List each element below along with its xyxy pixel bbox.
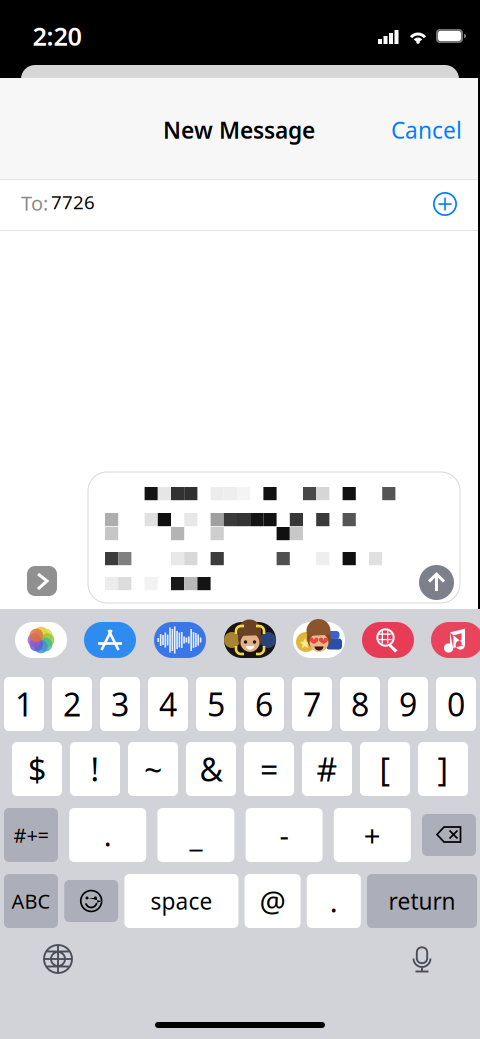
button[interactable]: Cancel [352, 113, 462, 147]
button[interactable]: = [244, 742, 294, 796]
button[interactable]: Switch keyboard [43, 944, 73, 974]
button[interactable]: Images [362, 622, 414, 658]
button[interactable]: 6 [244, 677, 284, 731]
button[interactable]: #+= [4, 808, 58, 862]
button[interactable]: Send [419, 565, 454, 600]
staticText: 9 [399, 683, 417, 725]
button[interactable]: _ [157, 808, 234, 862]
button[interactable]: Memoji stickers [293, 622, 345, 658]
staticText: 2:20 [32, 19, 81, 53]
staticText: #+= [13, 822, 48, 848]
button[interactable]: 2 [52, 677, 92, 731]
staticText: 3 [111, 683, 129, 725]
button[interactable]: [ [360, 742, 410, 796]
button[interactable]: - [246, 808, 323, 862]
button[interactable]: Music [431, 622, 480, 658]
button[interactable]: return [367, 874, 477, 928]
staticText: New Message [163, 115, 315, 145]
button[interactable]: Memoji [224, 622, 276, 658]
staticText: 4 [159, 683, 177, 725]
button[interactable]: 1 [4, 677, 44, 731]
button[interactable]: 8 [340, 677, 380, 731]
button[interactable]: & [186, 742, 236, 796]
staticText: @ [260, 881, 286, 920]
staticText: ! [90, 748, 99, 790]
button[interactable]: Delete [422, 814, 476, 856]
button[interactable]: # [302, 742, 352, 796]
staticText: ~ [144, 748, 162, 790]
staticText: ] [437, 748, 448, 790]
staticText: [ [379, 748, 390, 790]
staticText: ABC [11, 888, 50, 914]
staticText: 6 [255, 683, 273, 725]
button[interactable]: 7 [292, 677, 332, 731]
staticText: To: [21, 190, 48, 216]
button[interactable]: . [307, 874, 361, 928]
staticText: + [364, 815, 381, 854]
button[interactable]: @ [245, 874, 301, 928]
button[interactable]: + [334, 808, 411, 862]
button[interactable]: Emoji [64, 880, 118, 922]
button[interactable]: Add contact [432, 191, 458, 217]
button[interactable]: 5 [196, 677, 236, 731]
staticText: - [280, 815, 289, 854]
staticText: 7726 [51, 190, 95, 214]
staticText: space [150, 886, 212, 916]
button[interactable]: 9 [388, 677, 428, 731]
staticText: . [104, 815, 112, 854]
staticText: & [199, 748, 222, 790]
staticText: 7 [303, 683, 321, 725]
staticText: $ [28, 748, 46, 790]
button[interactable]: Dictate [408, 944, 436, 974]
button[interactable]: Audio [154, 622, 206, 658]
button[interactable]: 3 [100, 677, 140, 731]
button[interactable]: ~ [128, 742, 178, 796]
staticText: 8 [351, 683, 369, 725]
button[interactable]: 0 [436, 677, 476, 731]
staticText: . [330, 881, 338, 920]
button[interactable]: ABC [4, 874, 58, 928]
button[interactable]: . [69, 808, 146, 862]
button[interactable]: ] [418, 742, 468, 796]
staticText: # [316, 748, 337, 790]
button[interactable]: $ [12, 742, 62, 796]
button[interactable]: space [124, 874, 238, 928]
button[interactable]: App Store [84, 622, 136, 658]
button[interactable]: Photos [15, 622, 67, 658]
staticText: return [388, 886, 455, 916]
button[interactable]: ! [70, 742, 120, 796]
staticText: _ [189, 815, 202, 854]
staticText: 2 [63, 683, 81, 725]
staticText: Cancel [391, 115, 462, 145]
staticText: 5 [207, 683, 225, 725]
button[interactable]: Show apps [27, 566, 57, 596]
staticText: 0 [447, 683, 465, 725]
button[interactable]: 4 [148, 677, 188, 731]
staticText: = [260, 748, 278, 790]
staticText: 1 [15, 683, 33, 725]
